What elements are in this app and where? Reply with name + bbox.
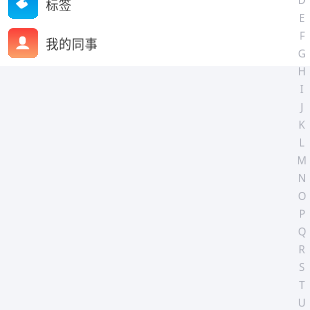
button[interactable]: Jump to section K — [293, 116, 310, 133]
staticText: I — [300, 82, 304, 96]
button[interactable]: Jump to section R — [293, 240, 310, 258]
staticText: Q — [298, 224, 306, 238]
button[interactable]: Jump to section L — [293, 133, 310, 151]
staticText: M — [297, 153, 307, 167]
staticText: P — [299, 206, 305, 221]
staticText: G — [298, 46, 306, 60]
staticText: T — [299, 278, 305, 292]
staticText: N — [298, 171, 306, 185]
button[interactable]: Jump to section O — [293, 187, 310, 205]
staticText: D — [298, 0, 306, 7]
button[interactable]: Jump to section M — [293, 151, 310, 169]
button[interactable]: Jump to section U — [293, 294, 310, 310]
button[interactable]: Jump to section P — [293, 205, 310, 222]
staticText: R — [298, 242, 305, 256]
staticText: S — [299, 260, 305, 274]
staticText: K — [298, 117, 305, 132]
button[interactable]: Jump to section S — [293, 258, 310, 276]
button[interactable]: Jump to section N — [293, 169, 310, 187]
staticText: E — [299, 11, 305, 25]
button[interactable]: Jump to section F — [293, 27, 310, 44]
button[interactable]: Jump to section H — [293, 62, 310, 80]
staticText: O — [298, 189, 306, 203]
button[interactable]: Jump to section D — [293, 0, 310, 9]
button[interactable]: Jump to section I — [293, 80, 310, 98]
staticText: 我的同事 — [46, 34, 98, 52]
staticText: F — [299, 28, 304, 43]
button[interactable]: Jump to section G — [293, 44, 310, 62]
staticText: U — [298, 295, 306, 310]
button[interactable]: 标签 — [0, 0, 310, 23]
staticText: H — [298, 64, 306, 78]
staticText: L — [299, 135, 305, 149]
staticText: J — [300, 100, 303, 114]
button[interactable]: Jump to section J — [293, 98, 310, 116]
staticText: 标签 — [46, 0, 72, 13]
button[interactable]: Jump to section Q — [293, 222, 310, 240]
button[interactable]: Jump to section T — [293, 276, 310, 294]
button[interactable]: Jump to section E — [293, 9, 310, 27]
button[interactable]: 我的同事 — [0, 23, 310, 62]
